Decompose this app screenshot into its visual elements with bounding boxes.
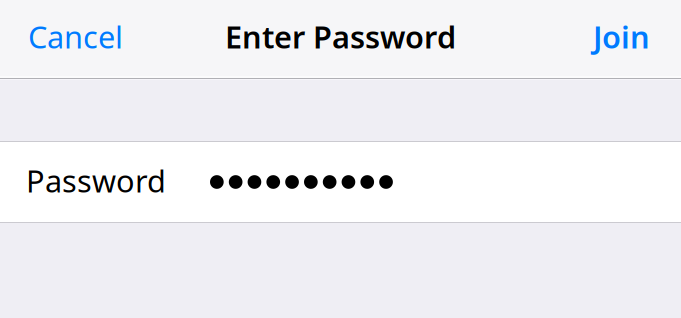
button[interactable]: Cancel <box>28 2 135 71</box>
staticText: Join <box>593 16 650 57</box>
staticText: Password <box>26 160 166 201</box>
staticText: Enter Password <box>225 16 456 57</box>
button[interactable]: Join <box>581 2 650 71</box>
button[interactable]: Password <box>0 142 681 222</box>
staticText: Cancel <box>28 16 123 57</box>
